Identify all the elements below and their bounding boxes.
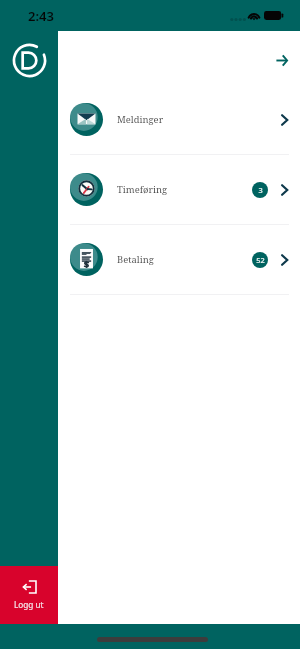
- staticText: Timeføring: [117, 183, 168, 196]
- button[interactable]: Betaling: [58, 225, 300, 294]
- button[interactable]: Logg ut: [0, 566, 58, 624]
- button[interactable]: Home: [12, 43, 47, 78]
- staticText: 3: [258, 185, 263, 195]
- staticText: 52: [256, 255, 265, 265]
- staticText: Betaling: [117, 253, 154, 266]
- button[interactable]: Timeføring: [58, 155, 300, 224]
- staticText: Meldinger: [117, 113, 164, 126]
- button[interactable]: Forward: [268, 46, 296, 74]
- staticText: 2:43: [28, 7, 54, 25]
- staticText: Logg ut: [14, 599, 44, 610]
- button[interactable]: Meldinger: [58, 85, 300, 154]
